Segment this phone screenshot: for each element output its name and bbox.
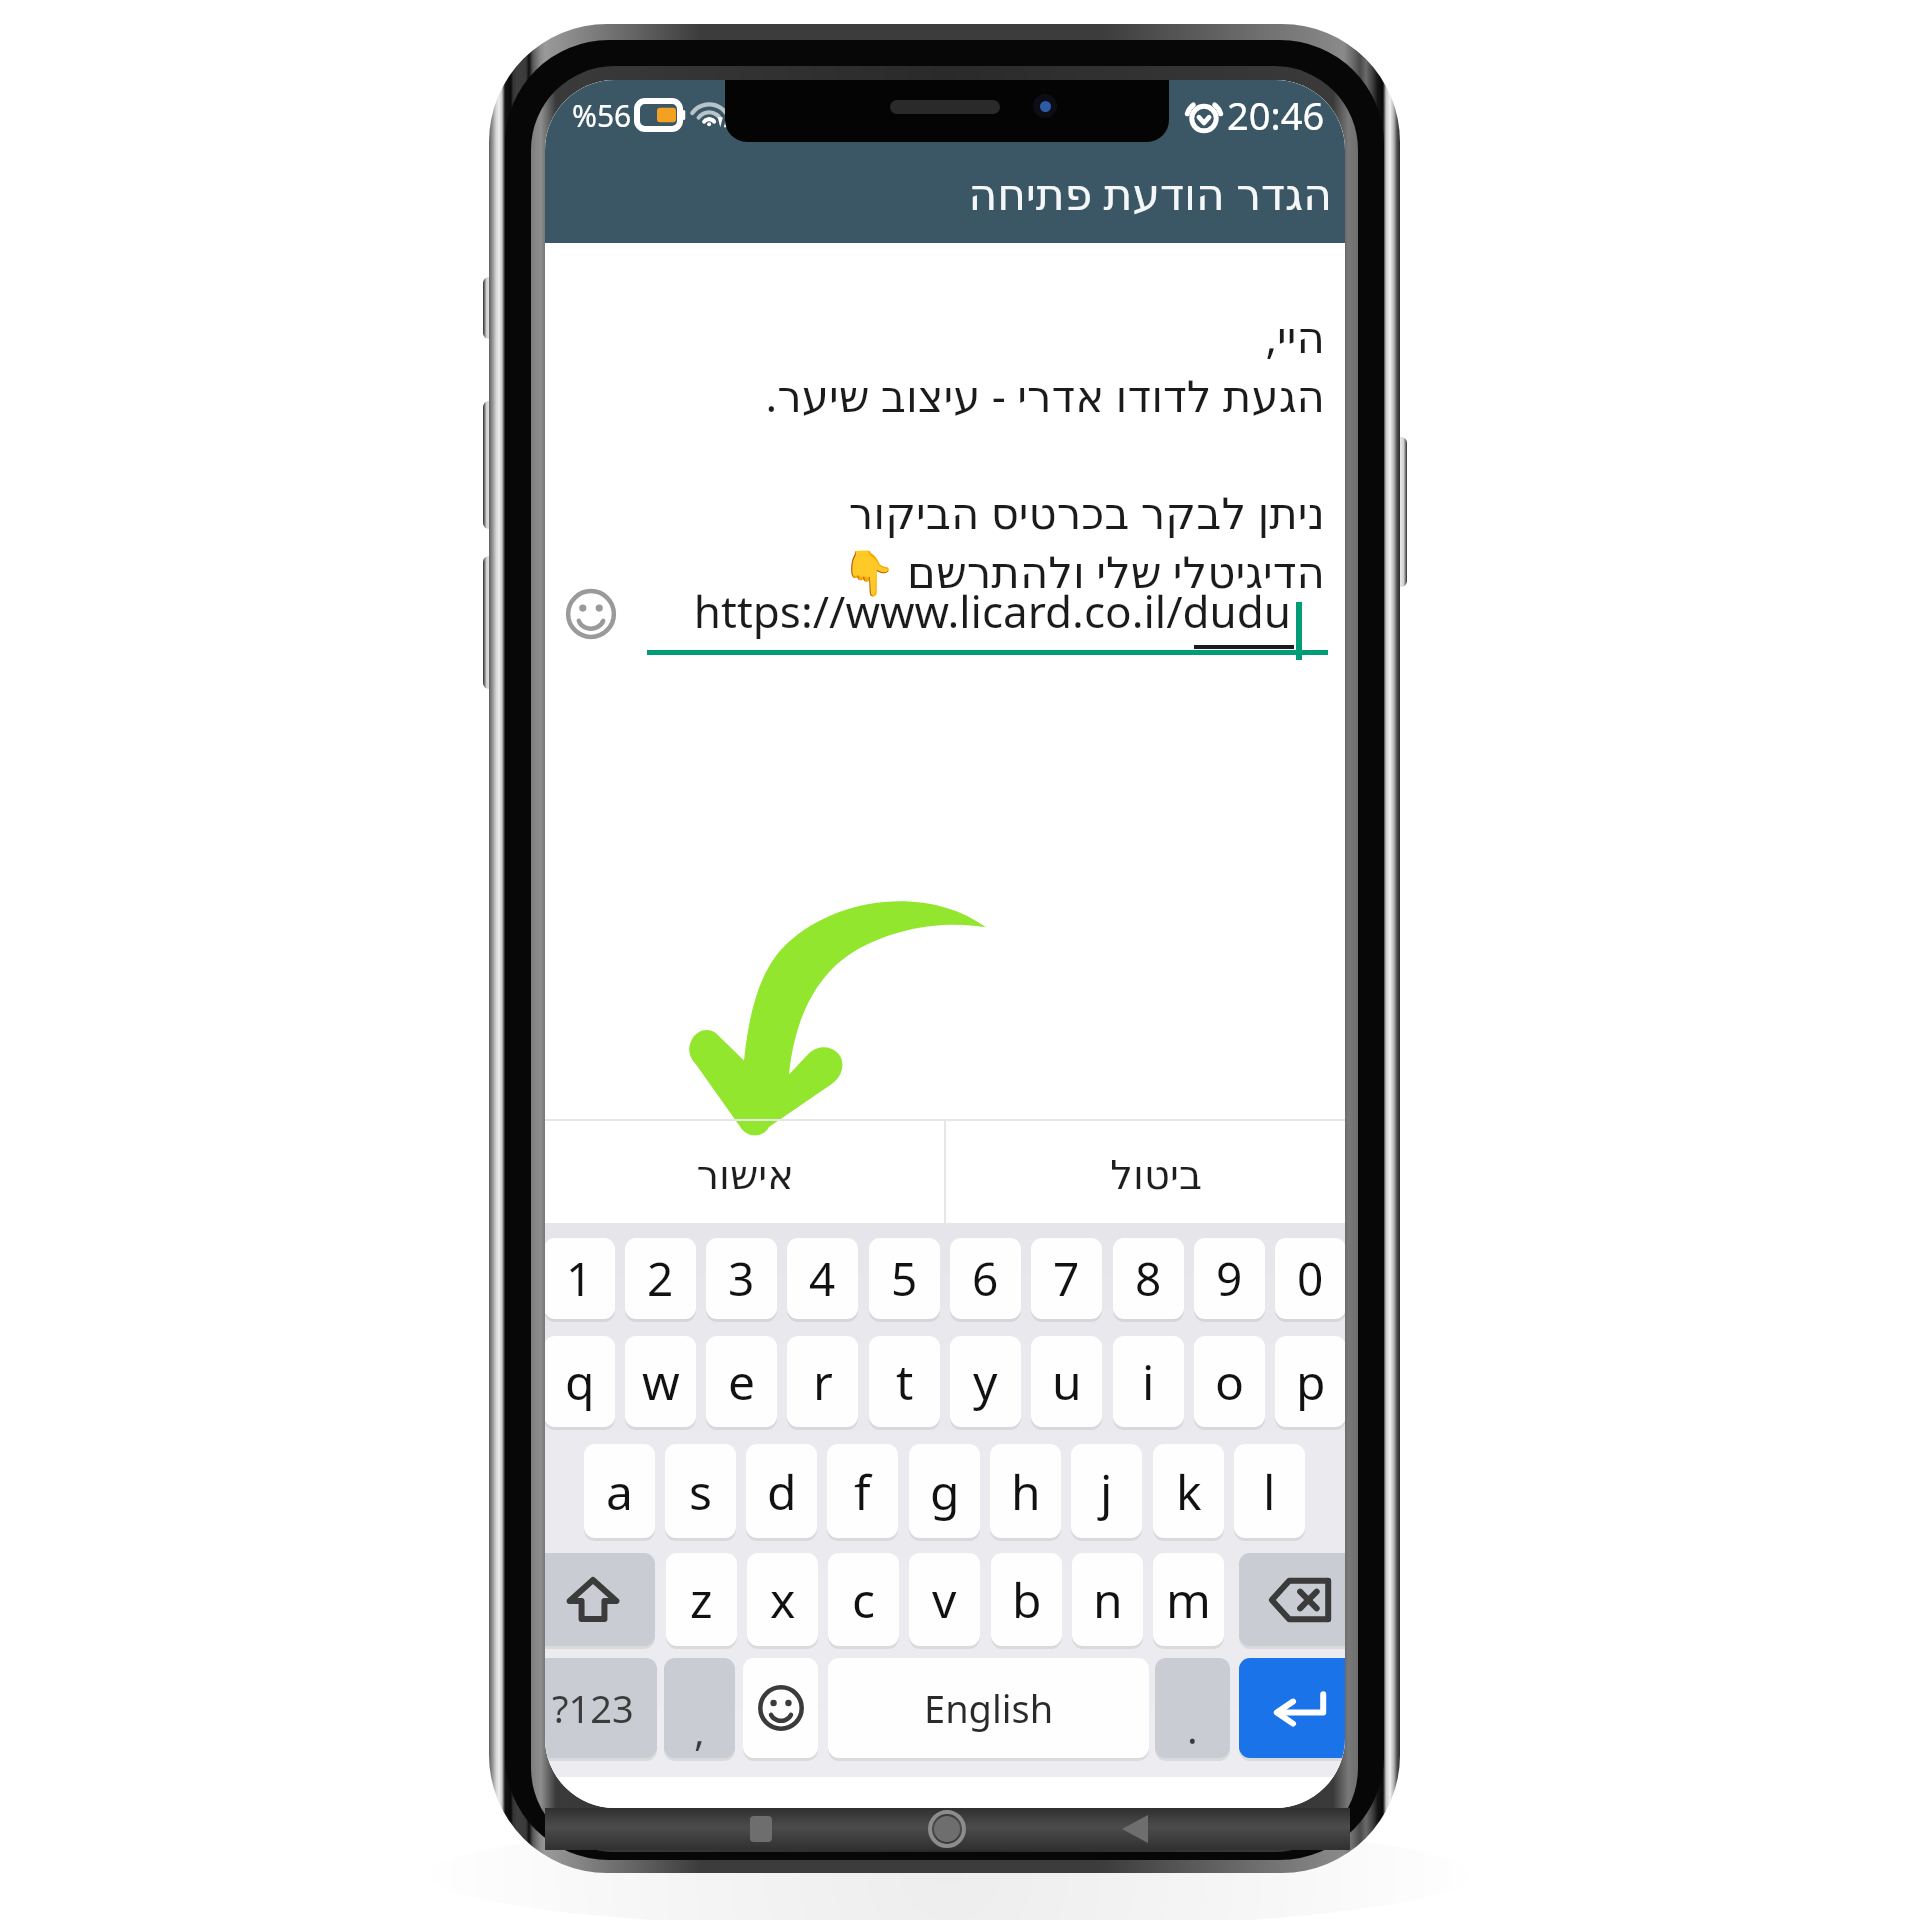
- staticText: היי,: [565, 306, 1325, 365]
- staticText: c: [852, 1567, 876, 1632]
- staticText: k: [1176, 1459, 1202, 1524]
- staticText: ביטול: [1110, 1152, 1202, 1199]
- button[interactable]: 6: [950, 1238, 1021, 1319]
- button[interactable]: n: [1072, 1553, 1143, 1646]
- staticText: ,: [694, 1703, 705, 1757]
- button[interactable]: 5: [869, 1238, 940, 1319]
- staticText: u: [1052, 1349, 1082, 1414]
- staticText: 20:46: [1227, 89, 1325, 141]
- staticText: n: [1093, 1567, 1123, 1632]
- staticText: הגדר הודעת פתיחה: [968, 163, 1332, 223]
- staticText: b: [1012, 1567, 1042, 1632]
- staticText: 6: [972, 1247, 999, 1310]
- staticText: ניתן לבקר בכרטיס הביקור: [565, 482, 1325, 541]
- staticText: הדיגיטלי שלי ולהתרשם 👇: [565, 541, 1325, 600]
- staticText: English: [924, 1682, 1054, 1734]
- button[interactable]: Emoji: [565, 588, 617, 640]
- button[interactable]: j: [1071, 1444, 1142, 1538]
- button[interactable]: ביטול: [946, 1119, 1345, 1224]
- button[interactable]: i: [1113, 1336, 1184, 1427]
- staticText: a: [606, 1459, 633, 1524]
- staticText: o: [1215, 1349, 1245, 1414]
- staticText: p: [1296, 1349, 1326, 1414]
- button[interactable]: v: [909, 1553, 980, 1646]
- staticText: i: [1142, 1349, 1155, 1414]
- staticText: %56: [572, 95, 632, 136]
- staticText: m: [1166, 1567, 1211, 1632]
- button[interactable]: u: [1031, 1336, 1102, 1427]
- staticText: l: [1263, 1459, 1276, 1524]
- staticText: אישור: [696, 1152, 794, 1199]
- staticText: d: [767, 1459, 797, 1524]
- button[interactable]: e: [706, 1336, 777, 1427]
- staticText: z: [690, 1567, 713, 1632]
- staticText: 9: [1216, 1247, 1243, 1310]
- button[interactable]: g: [909, 1444, 980, 1538]
- button[interactable]: היי,: [565, 306, 1325, 600]
- staticText: h: [1011, 1459, 1041, 1524]
- staticText: 3: [728, 1247, 755, 1310]
- button[interactable]: https://www.licard.co.il/dudu: [647, 581, 1328, 655]
- button[interactable]: אישור: [545, 1119, 944, 1224]
- button[interactable]: 7: [1031, 1238, 1102, 1319]
- button[interactable]: x: [747, 1553, 818, 1646]
- staticText: y: [973, 1349, 998, 1414]
- staticText: v: [932, 1567, 957, 1632]
- button[interactable]: 9: [1194, 1238, 1265, 1319]
- button[interactable]: y: [950, 1336, 1021, 1427]
- staticText: j: [1100, 1459, 1113, 1524]
- button[interactable]: r: [787, 1336, 858, 1427]
- staticText: w: [642, 1349, 680, 1414]
- staticText: 4: [809, 1247, 836, 1310]
- staticText: 5: [891, 1247, 918, 1310]
- button[interactable]: a: [584, 1444, 655, 1538]
- button[interactable]: ,: [664, 1658, 735, 1758]
- staticText: 8: [1135, 1247, 1162, 1310]
- button[interactable]: o: [1194, 1336, 1265, 1427]
- button[interactable]: Enter: [1239, 1658, 1345, 1758]
- button[interactable]: p: [1275, 1336, 1345, 1427]
- staticText: s: [689, 1459, 712, 1524]
- staticText: https://www.licard.co.il/dudu: [647, 581, 1291, 641]
- button[interactable]: 4: [787, 1238, 858, 1319]
- button[interactable]: 8: [1113, 1238, 1184, 1319]
- staticText: 7: [1053, 1247, 1080, 1310]
- staticText: x: [770, 1567, 796, 1632]
- button[interactable]: w: [625, 1336, 696, 1427]
- staticText: 2: [647, 1247, 674, 1310]
- button[interactable]: z: [666, 1553, 737, 1646]
- staticText: .: [1187, 1701, 1198, 1755]
- button[interactable]: 0: [1275, 1238, 1345, 1319]
- button[interactable]: k: [1153, 1444, 1224, 1538]
- button[interactable]: c: [828, 1553, 899, 1646]
- button[interactable]: Backspace: [1239, 1553, 1345, 1646]
- button[interactable]: 3: [706, 1238, 777, 1319]
- button[interactable]: 1: [545, 1238, 615, 1319]
- staticText: q: [565, 1349, 595, 1414]
- staticText: g: [930, 1459, 960, 1524]
- button[interactable]: q: [545, 1336, 615, 1427]
- staticText: t: [896, 1349, 914, 1414]
- staticText: f: [854, 1459, 871, 1524]
- button[interactable]: f: [827, 1444, 898, 1538]
- button[interactable]: s: [665, 1444, 736, 1538]
- button[interactable]: English: [828, 1658, 1149, 1758]
- button[interactable]: Emoji: [743, 1658, 818, 1758]
- button[interactable]: b: [991, 1553, 1062, 1646]
- button[interactable]: 2: [625, 1238, 696, 1319]
- button[interactable]: ?123: [545, 1658, 657, 1758]
- button[interactable]: .: [1155, 1658, 1230, 1758]
- button[interactable]: t: [869, 1336, 940, 1427]
- staticText: r: [813, 1349, 833, 1414]
- staticText: ?123: [552, 1682, 634, 1734]
- button[interactable]: l: [1234, 1444, 1305, 1538]
- button[interactable]: Shift: [545, 1553, 655, 1646]
- staticText: e: [728, 1349, 756, 1414]
- staticText: הגעת לדודו אדרי - עיצוב שיער.: [565, 365, 1325, 424]
- button[interactable]: d: [746, 1444, 817, 1538]
- button[interactable]: h: [990, 1444, 1061, 1538]
- staticText: 1: [566, 1247, 593, 1310]
- staticText: 0: [1297, 1247, 1324, 1310]
- button[interactable]: m: [1153, 1553, 1224, 1646]
